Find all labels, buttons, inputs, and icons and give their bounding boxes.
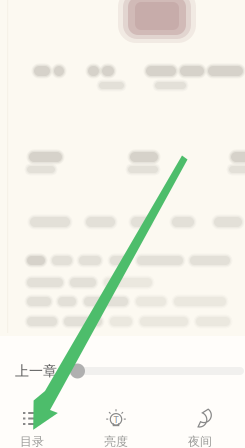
button[interactable]: T <box>74 397 158 448</box>
button[interactable]: 夜间 <box>158 397 242 448</box>
staticText: 夜间 <box>188 434 212 448</box>
staticText: 亮度 <box>104 434 128 448</box>
staticText: T <box>113 413 118 426</box>
staticText: 上一章 <box>15 362 57 380</box>
staticText: 目录 <box>20 434 44 448</box>
button[interactable]: 目录 <box>0 397 74 448</box>
button[interactable]: 上一章 <box>10 354 62 388</box>
